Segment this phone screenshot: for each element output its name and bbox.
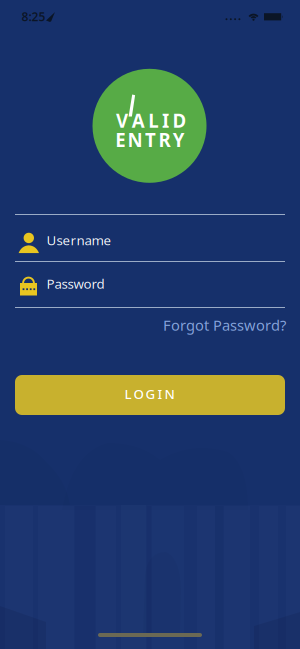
staticText: A <box>132 108 145 133</box>
staticText: R <box>158 127 170 152</box>
staticText: D <box>172 108 186 133</box>
staticText: 8:25 <box>21 8 45 24</box>
staticText: V <box>116 108 128 133</box>
staticText: N <box>128 127 143 152</box>
staticText: T <box>145 127 156 152</box>
staticText: Password <box>46 275 104 292</box>
button[interactable]: Password <box>0 261 300 307</box>
staticText: LOGIN <box>124 385 175 403</box>
staticText: Username <box>46 231 111 249</box>
button[interactable]: LOGIN <box>15 375 285 415</box>
staticText: L <box>148 108 158 133</box>
button[interactable]: Forgot Password? <box>0 311 300 339</box>
button[interactable]: Username <box>0 215 300 261</box>
staticText: E <box>115 127 125 152</box>
staticText: Forgot Password? <box>163 315 286 335</box>
staticText: I <box>162 108 169 133</box>
staticText: Y <box>173 127 185 152</box>
